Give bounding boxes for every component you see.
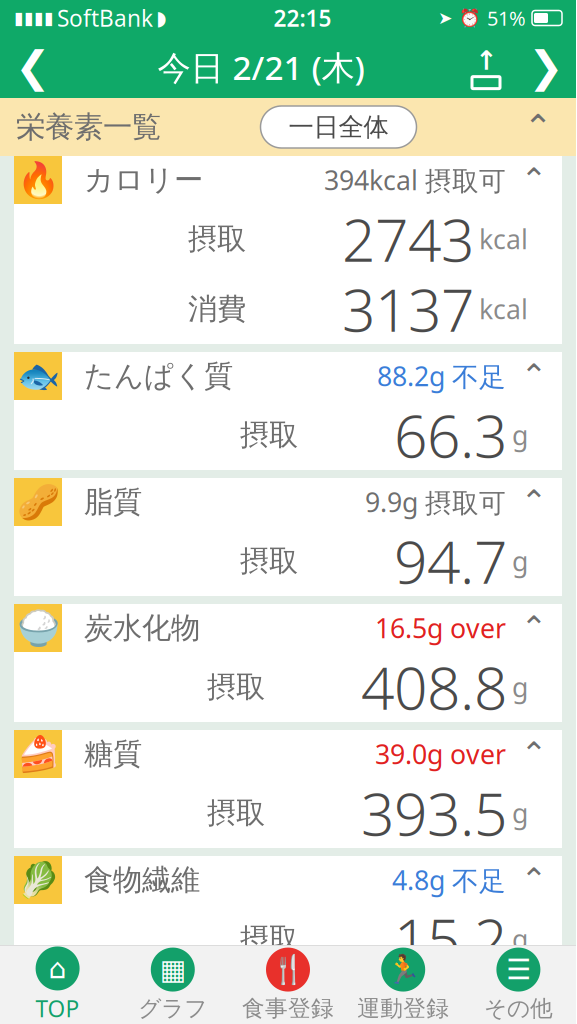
staticText: 炭水化物 <box>84 610 200 646</box>
staticText: その他 <box>484 995 553 1022</box>
staticText: 摂取 <box>240 543 298 579</box>
staticText: たんぱく質 <box>84 358 233 394</box>
staticText: ⌂ <box>49 953 67 984</box>
staticText: ⏰ <box>459 8 481 28</box>
staticText: ◗ <box>156 7 167 29</box>
staticText: 51% <box>487 5 526 31</box>
staticText: 16.5g over <box>375 610 506 646</box>
staticText: kcal <box>479 221 528 257</box>
staticText: ❮ <box>15 43 51 91</box>
staticText: g <box>512 795 528 831</box>
button[interactable]: 折りたたむ <box>516 105 560 149</box>
staticText: ▦ <box>160 954 186 985</box>
staticText: 食事登録 <box>242 995 334 1022</box>
button[interactable]: ▦ <box>115 946 230 1024</box>
staticText: g <box>512 417 528 453</box>
button[interactable]: ☰ <box>461 946 576 1024</box>
staticText: 脂質 <box>84 484 142 520</box>
staticText: 394kcal 摂取可 <box>324 162 506 198</box>
staticText: 22:15 <box>273 3 331 33</box>
staticText: g <box>512 669 528 705</box>
staticText: ⌃ <box>520 610 547 646</box>
staticText: ▮▮▮▮ <box>14 8 54 28</box>
staticText: 摂取 <box>188 221 246 257</box>
staticText: 🔥 <box>16 160 59 200</box>
staticText: 94.7 <box>394 522 507 600</box>
button[interactable]: 🍰 <box>14 730 562 778</box>
staticText: グラフ <box>138 995 207 1022</box>
staticText: 🍰 <box>16 734 59 774</box>
staticText: 摂取 <box>207 669 265 705</box>
button[interactable]: 一日全体 <box>260 106 416 148</box>
staticText: 摂取 <box>240 921 298 957</box>
staticText: 糖質 <box>84 736 142 772</box>
button[interactable]: 🔥 <box>14 156 562 204</box>
button[interactable]: 🥜 <box>14 478 562 526</box>
staticText: ➤ <box>438 8 453 28</box>
staticText: 🐟 <box>16 356 59 396</box>
staticText: ⌃ <box>520 736 547 772</box>
staticText: g <box>512 921 528 957</box>
staticText: 393.5 <box>361 774 507 852</box>
staticText: 🥬 <box>16 860 59 900</box>
staticText: kcal <box>479 291 528 327</box>
staticText: 15.2 <box>394 900 507 978</box>
button[interactable]: 🥬 <box>14 856 562 904</box>
staticText: 栄養素一覧 <box>16 109 161 145</box>
staticText: 39.0g over <box>375 736 506 772</box>
button[interactable]: 🍴 <box>230 946 346 1024</box>
staticText: カロリー <box>84 162 203 198</box>
button[interactable]: 共有 <box>456 36 516 98</box>
staticText: 食物繊維 <box>84 862 200 898</box>
staticText: 408.8 <box>361 648 507 726</box>
staticText: 🥜 <box>16 482 59 522</box>
button[interactable]: 🐟 <box>14 352 562 400</box>
staticText: 摂取 <box>207 795 265 831</box>
staticText: 運動登録 <box>357 995 449 1022</box>
button[interactable]: 次の日 <box>516 36 576 98</box>
staticText: 消費 <box>188 291 246 327</box>
staticText: TOP <box>36 993 80 1023</box>
staticText: 🏃 <box>386 954 421 986</box>
staticText: ⌃ <box>520 862 547 898</box>
staticText: 今日 2/21 (木) <box>157 45 364 89</box>
button[interactable]: ⌂ <box>0 946 115 1024</box>
staticText: SoftBank <box>57 3 153 33</box>
staticText: 一日全体 <box>288 111 388 142</box>
staticText: ⌃ <box>520 162 547 198</box>
staticText: g <box>512 543 528 579</box>
staticText: 摂取 <box>240 417 298 453</box>
staticText: ☰ <box>506 954 531 985</box>
staticText: ⌃ <box>520 358 547 394</box>
button[interactable]: 前の日 <box>0 36 66 98</box>
staticText: 3137 <box>342 270 474 348</box>
staticText: ⌃ <box>520 484 547 520</box>
staticText: 88.2g 不足 <box>377 358 506 394</box>
staticText: 🍴 <box>270 954 305 986</box>
staticText: 2743 <box>342 200 474 278</box>
staticText: 4.8g 不足 <box>392 862 506 898</box>
staticText: ↑ <box>475 45 497 76</box>
staticText: 🍚 <box>16 608 59 648</box>
staticText: 66.3 <box>394 396 507 474</box>
staticText: ❯ <box>528 43 564 91</box>
staticText: ⌃ <box>523 107 552 147</box>
staticText: 9.9g 摂取可 <box>365 484 506 520</box>
button[interactable]: 🍚 <box>14 604 562 652</box>
button[interactable]: 🏃 <box>346 946 461 1024</box>
